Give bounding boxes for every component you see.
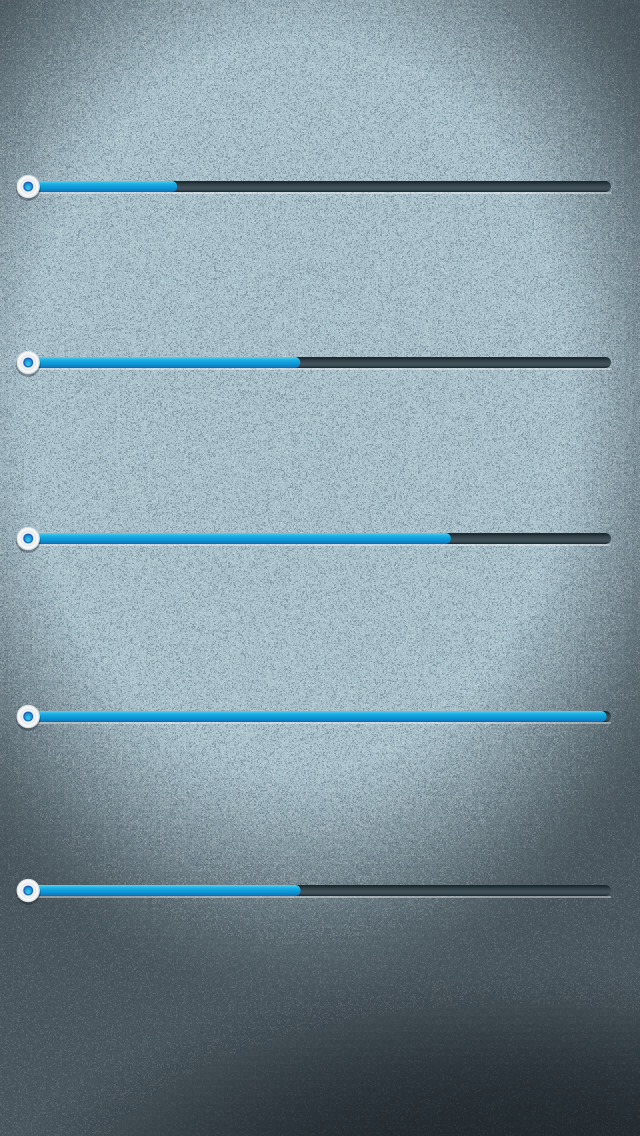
button[interactable]: Slider xyxy=(0,0,640,1136)
button[interactable]: Slider xyxy=(0,0,640,1136)
button[interactable]: Slider xyxy=(0,0,640,1136)
button[interactable]: Slider xyxy=(0,0,640,1136)
button[interactable]: Slider xyxy=(0,0,640,1136)
